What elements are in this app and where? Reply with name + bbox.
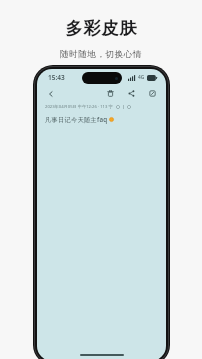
- staticText: 2023年04月05日 中午12:26 · 113 字: [45, 104, 113, 110]
- staticText: 多彩皮肤: [65, 18, 137, 39]
- button[interactable]: Weather: [116, 105, 120, 109]
- button[interactable]: Back: [44, 87, 57, 100]
- button[interactable]: Delete: [104, 87, 117, 100]
- staticText: 凡事日记今天随主faq: [45, 115, 108, 123]
- staticText: 4G: [138, 74, 145, 81]
- button[interactable]: Export: [146, 87, 159, 100]
- staticText: 随时随地，切换心情: [60, 49, 142, 60]
- staticText: 15:43: [48, 73, 65, 82]
- button[interactable]: Mood: [127, 105, 131, 109]
- button[interactable]: Share: [125, 87, 138, 100]
